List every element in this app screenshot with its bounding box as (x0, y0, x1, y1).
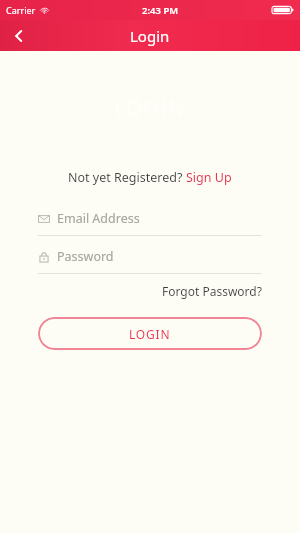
button[interactable]: LOGIN (38, 317, 262, 350)
staticText: Sign Up (186, 169, 232, 186)
staticText: Not yet Registered? (68, 169, 186, 186)
staticText: Email Address (57, 210, 140, 227)
button[interactable]: Back (6, 23, 32, 49)
staticText: Carrier (6, 4, 36, 16)
staticText: Password (57, 248, 114, 265)
button[interactable]: Forgot Password? (162, 281, 262, 301)
staticText: 2:43 PM (142, 4, 179, 17)
button[interactable]: Sign Up (186, 169, 232, 186)
staticText: Forgot Password? (162, 283, 262, 299)
staticText: Login (130, 26, 170, 46)
staticText: LOGIN (129, 326, 171, 342)
